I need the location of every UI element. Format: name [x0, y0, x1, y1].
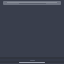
- button[interactable]: Navigation: [29, 59, 35, 61]
- button[interactable]: [3, 1, 61, 5]
